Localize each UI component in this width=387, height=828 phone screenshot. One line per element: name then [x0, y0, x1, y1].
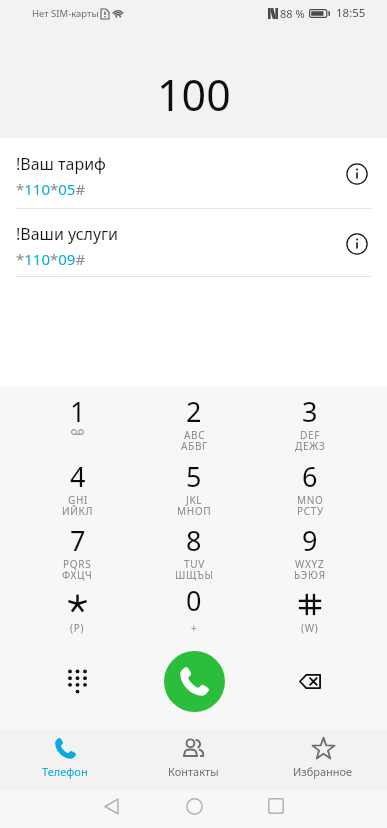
staticText: PQRS	[63, 557, 92, 571]
staticText: Телефон	[42, 764, 88, 779]
button[interactable]: (W)	[252, 575, 368, 639]
staticText: ШЩЪЫ	[175, 568, 214, 582]
staticText: 3	[302, 393, 318, 430]
staticText: WXYZ	[295, 557, 325, 571]
staticText: MNO	[297, 493, 324, 507]
button[interactable]: Info	[335, 222, 379, 266]
button[interactable]: (P)	[19, 575, 136, 639]
staticText: TUV	[184, 557, 205, 571]
staticText: 1	[70, 393, 86, 430]
button[interactable]: 3	[252, 386, 368, 450]
staticText: !Ваш тариф	[16, 153, 106, 175]
staticText: 7	[70, 522, 86, 559]
staticText: 2	[186, 393, 202, 430]
staticText: 0	[186, 582, 202, 619]
button[interactable]: !Ваш тариф	[0, 138, 387, 208]
staticText: 4	[70, 458, 86, 495]
button[interactable]: Контакты	[129, 730, 258, 790]
button[interactable]: 9	[252, 515, 368, 579]
button[interactable]: 8	[136, 515, 252, 579]
staticText: ИЙКЛ	[62, 504, 94, 518]
staticText: 6	[302, 458, 318, 495]
button[interactable]: Call	[164, 651, 225, 712]
button[interactable]: 5	[136, 451, 252, 515]
button[interactable]: Телефон	[0, 730, 129, 790]
button[interactable]: Избранное	[258, 730, 387, 790]
staticText: Контакты	[168, 764, 219, 779]
staticText: +	[191, 621, 198, 635]
button[interactable]: Dialpad	[19, 650, 136, 712]
button[interactable]: Recents	[252, 787, 300, 825]
staticText: ABC	[184, 428, 206, 442]
staticText: 18:55	[336, 5, 366, 21]
staticText: АБВГ	[181, 439, 208, 453]
staticText: DEF	[300, 428, 321, 442]
button[interactable]: 6	[252, 451, 368, 515]
staticText: 100	[157, 65, 231, 124]
staticText: JKL	[186, 493, 203, 507]
staticText: *110*05#	[16, 179, 86, 199]
button[interactable]: 4	[19, 451, 136, 515]
staticText: ЬЭЮЯ	[294, 568, 326, 582]
staticText: !Ваши услуги	[16, 223, 119, 245]
staticText: (P)	[70, 621, 85, 635]
staticText: ДЕЖЗ	[295, 439, 326, 453]
button[interactable]: Info	[335, 152, 379, 196]
button[interactable]: 7	[19, 515, 136, 579]
staticText: МНОП	[177, 504, 212, 518]
staticText: 88 %	[280, 6, 305, 21]
staticText: 9	[302, 522, 318, 559]
staticText: ФХЦЧ	[62, 568, 93, 582]
staticText: Нет SIM-карты	[32, 7, 99, 20]
staticText: *110*09#	[16, 249, 86, 269]
button[interactable]: 2	[136, 386, 252, 450]
staticText: GHI	[68, 493, 89, 507]
button[interactable]: Back	[87, 787, 135, 825]
staticText: РСТУ	[297, 504, 324, 518]
button[interactable]: Delete	[252, 650, 368, 712]
button[interactable]: 0	[136, 575, 252, 639]
button[interactable]: !Ваши услуги	[0, 209, 387, 276]
staticText: 8	[186, 522, 202, 559]
button[interactable]: 1	[19, 386, 136, 450]
button[interactable]: Home	[170, 787, 218, 825]
staticText: (W)	[301, 621, 319, 635]
staticText: 5	[186, 458, 202, 495]
staticText: Избранное	[293, 764, 353, 779]
